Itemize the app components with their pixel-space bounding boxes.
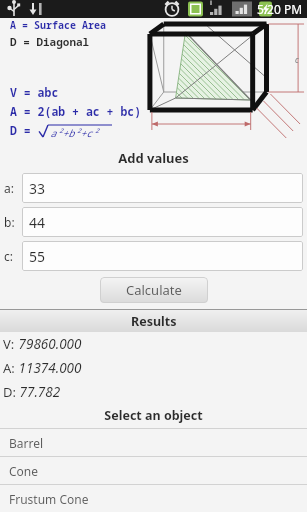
button[interactable]: Barrel — [0, 428, 307, 456]
button[interactable]: 44 — [22, 207, 303, 237]
staticText: Calculate — [126, 281, 182, 299]
staticText: A: — [3, 359, 15, 377]
staticText: 55 — [29, 247, 46, 266]
button[interactable]: Frustum Cone — [0, 484, 307, 512]
staticText: 77.782 — [16, 383, 61, 401]
staticText: Results — [131, 313, 177, 330]
staticText: a²+b²+c² — [50, 126, 98, 140]
staticText: 5:20 PM — [257, 1, 303, 17]
button[interactable]: Cone — [0, 456, 307, 484]
staticText: V: — [3, 335, 15, 353]
staticText: 33 — [29, 179, 46, 198]
staticText: Barrel — [9, 435, 44, 451]
staticText: Add values — [0, 149, 307, 167]
staticText: c — [295, 54, 299, 65]
staticText: V = abc — [10, 85, 59, 101]
staticText: D = — [10, 123, 38, 139]
staticText: D = Diagonal — [10, 34, 90, 49]
staticText: D: — [3, 383, 16, 401]
staticText: Cone — [9, 463, 39, 479]
staticText: Frustum Cone — [9, 491, 89, 507]
staticText: A = Surface Area — [10, 18, 106, 32]
staticText: 11374.000 — [15, 359, 82, 377]
button[interactable]: 33 — [22, 173, 303, 203]
button[interactable]: 55 — [22, 241, 303, 271]
staticText: A = 2(ab + ac + bc) — [10, 104, 142, 120]
staticText: b: — [4, 214, 22, 230]
staticText: c: — [4, 248, 22, 264]
button[interactable]: Calculate — [100, 277, 208, 303]
staticText: 79860.000 — [15, 335, 82, 353]
staticText: a: — [4, 180, 22, 196]
staticText: 44 — [29, 213, 46, 232]
staticText: Select an object — [0, 407, 307, 424]
